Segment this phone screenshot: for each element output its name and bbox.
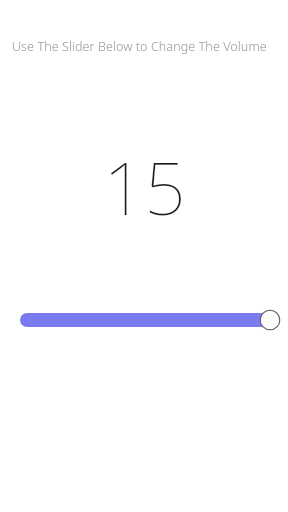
button[interactable]: Volume slider: [0, 300, 288, 340]
staticText: Use The Slider Below to Change The Volum…: [12, 38, 276, 55]
staticText: 15: [103, 138, 186, 236]
